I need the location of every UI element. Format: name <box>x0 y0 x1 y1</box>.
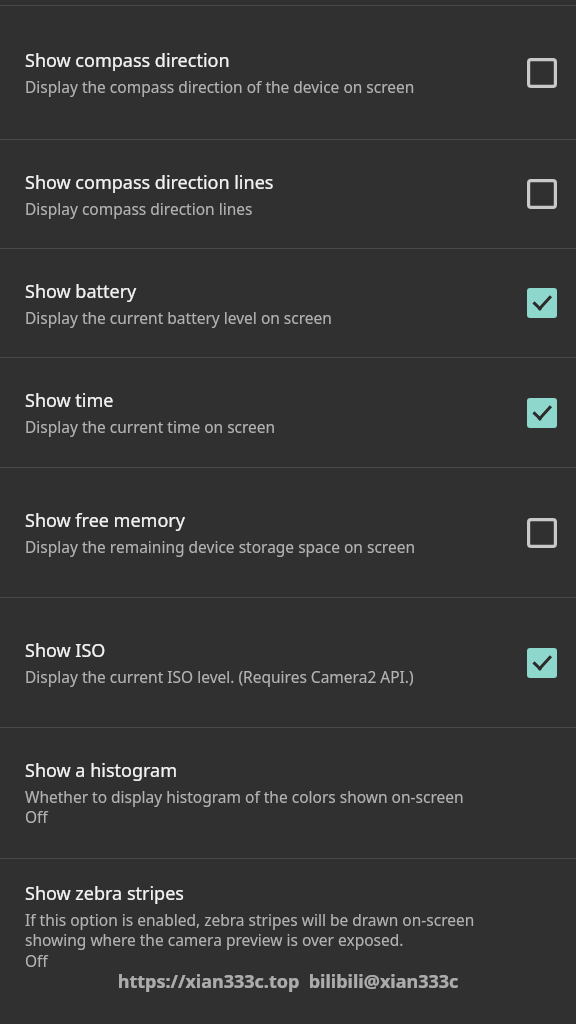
staticText: Display compass direction lines <box>25 198 253 219</box>
staticText: Show free memory <box>25 508 185 533</box>
button[interactable]: Enabled, checkbox <box>518 389 566 437</box>
button[interactable]: Show zebra stripes <box>0 859 576 1024</box>
staticText: If this option is enabled, zebra stripes… <box>25 909 495 972</box>
button[interactable]: Disabled, checkbox <box>518 170 566 218</box>
staticText: Show ISO <box>25 638 106 663</box>
staticText: Show a histogram <box>25 758 177 783</box>
button[interactable]: Enabled, checkbox <box>518 279 566 327</box>
button[interactable]: Show a histogram <box>0 728 576 858</box>
button[interactable]: Show ISO <box>0 598 576 727</box>
staticText: Display the remaining device storage spa… <box>25 536 415 557</box>
staticText: Show compass direction <box>25 48 230 73</box>
staticText: Display the compass direction of the dev… <box>25 76 415 97</box>
staticText: Whether to display histogram of the colo… <box>25 786 464 828</box>
staticText: Show zebra stripes <box>25 881 184 906</box>
staticText: Show time <box>25 388 114 413</box>
staticText: Display the current ISO level. (Requires… <box>25 666 414 687</box>
button[interactable]: Show compass direction <box>0 6 576 139</box>
button[interactable]: Show free memory <box>0 468 576 597</box>
staticText: https://xian333c.top bilibili@xian333c <box>0 969 576 994</box>
button[interactable]: Enabled, checkbox <box>518 639 566 687</box>
button[interactable]: Disabled, checkbox <box>518 509 566 557</box>
staticText: Display the current time on screen <box>25 416 276 437</box>
button[interactable]: Show compass direction lines <box>0 140 576 248</box>
staticText: Show compass direction lines <box>25 170 274 195</box>
staticText: Display the current battery level on scr… <box>25 307 332 328</box>
button[interactable]: Show battery <box>0 249 576 357</box>
staticText: Show battery <box>25 279 137 304</box>
button[interactable]: Show time <box>0 358 576 467</box>
button[interactable]: Disabled, checkbox <box>518 49 566 97</box>
